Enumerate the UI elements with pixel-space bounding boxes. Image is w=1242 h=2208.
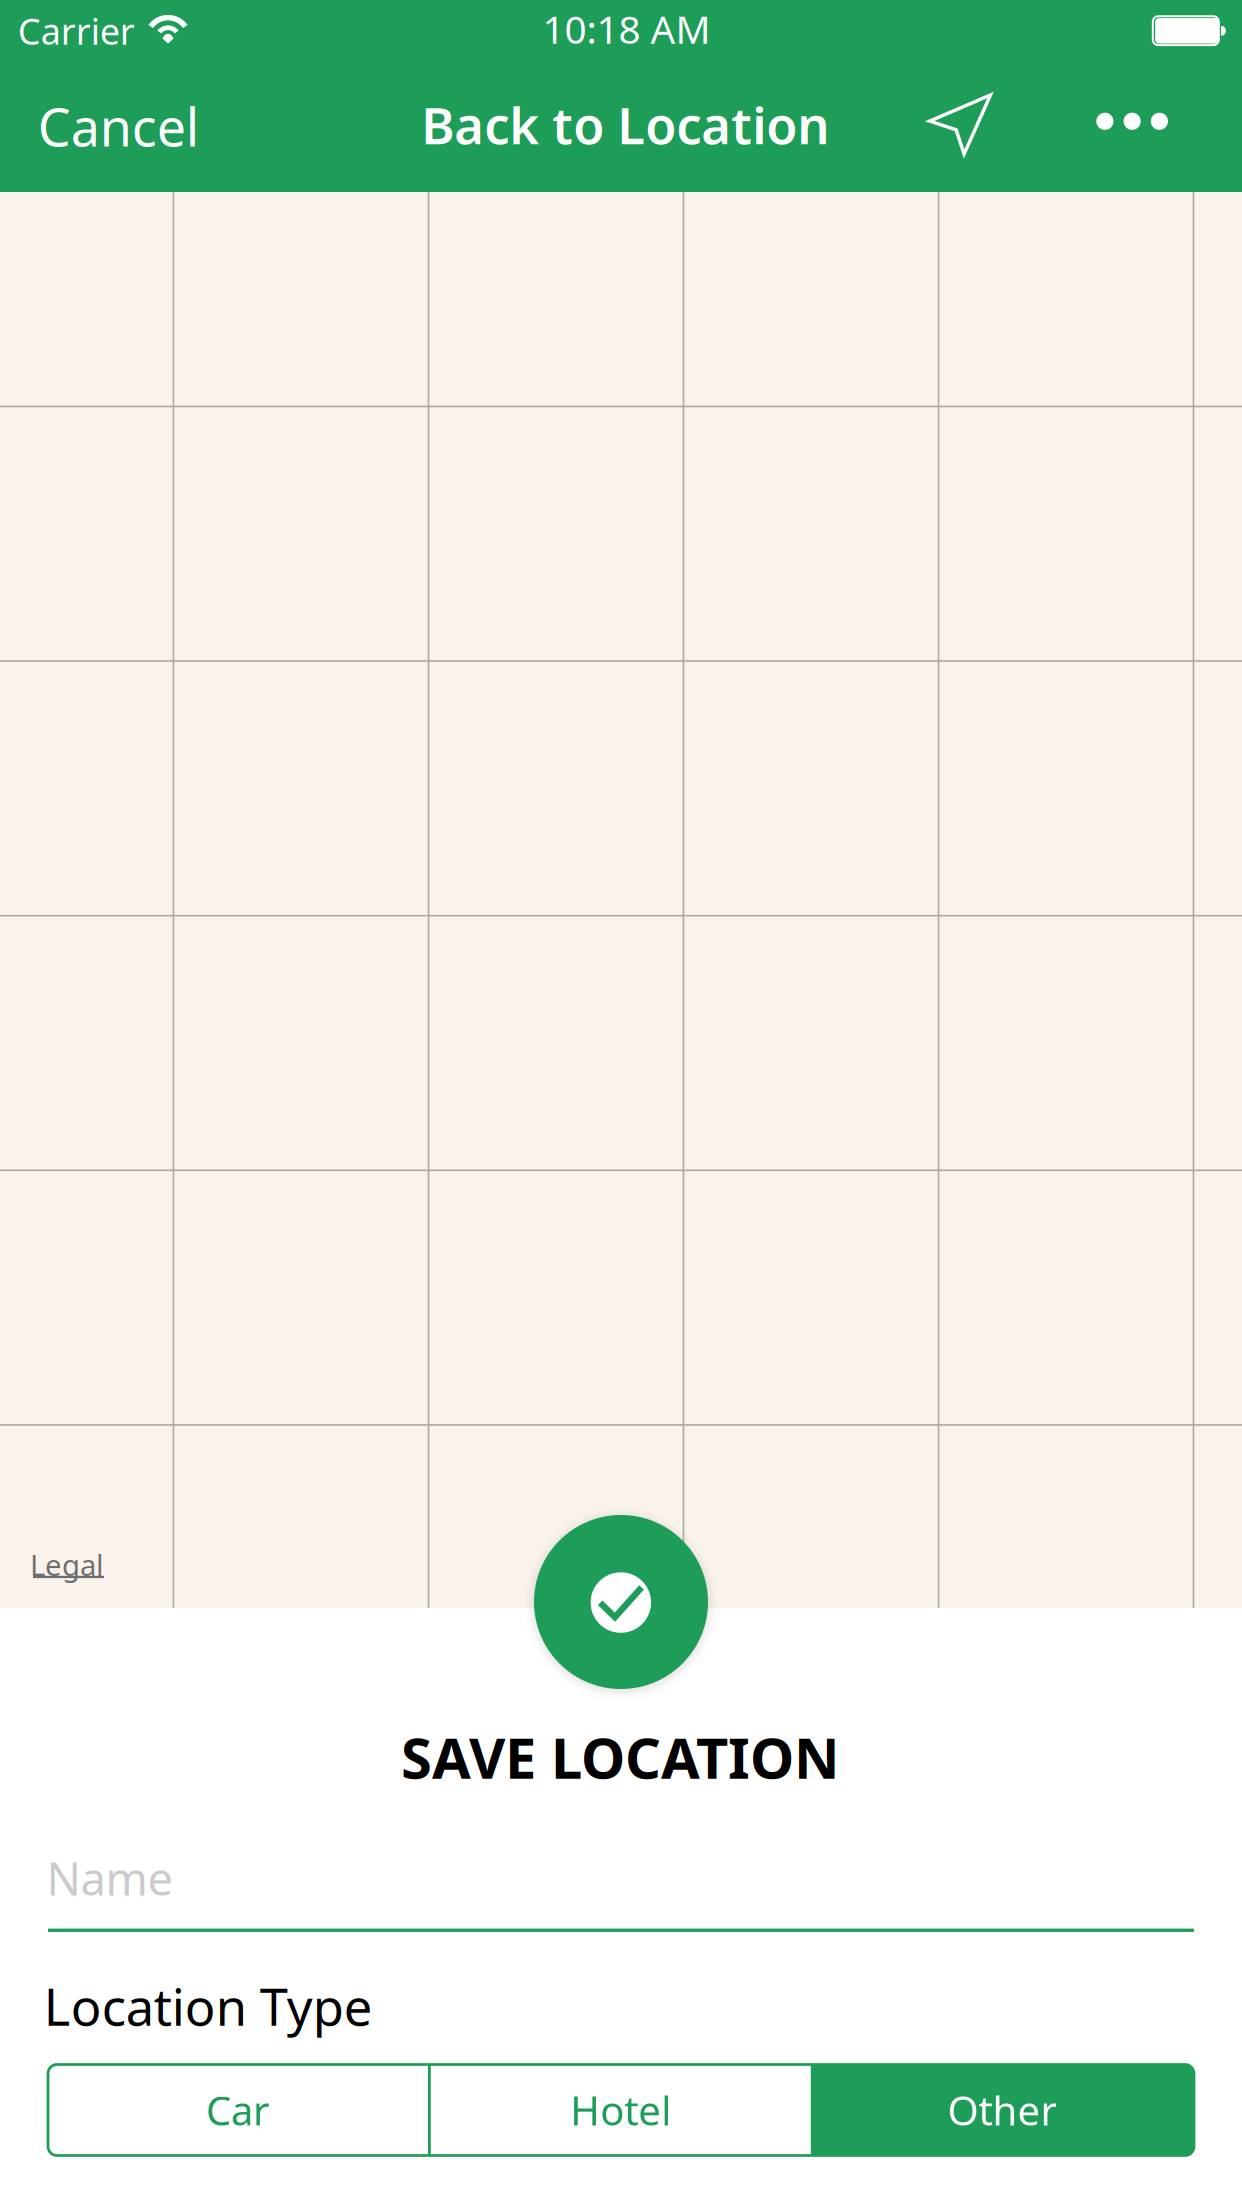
staticText: Carrier bbox=[18, 7, 135, 55]
button[interactable]: Hotel bbox=[431, 2064, 811, 2155]
button[interactable]: Car bbox=[48, 2064, 428, 2155]
staticText: Cancel bbox=[38, 92, 199, 161]
staticText: 10:18 AM bbox=[542, 3, 710, 54]
staticText: Other bbox=[947, 2083, 1057, 2136]
staticText: Legal bbox=[30, 1545, 104, 1584]
button[interactable]: Legal bbox=[30, 1545, 120, 1589]
staticText: Name bbox=[46, 1848, 173, 1908]
staticText: Back to Location bbox=[421, 91, 829, 158]
button[interactable]: Other bbox=[811, 2064, 1194, 2155]
staticText: Location Type bbox=[44, 1972, 373, 2040]
staticText: Hotel bbox=[570, 2083, 671, 2136]
staticText: Car bbox=[206, 2083, 270, 2136]
button[interactable]: Current location bbox=[896, 61, 1024, 191]
button[interactable]: More options bbox=[1066, 61, 1208, 191]
staticText: SAVE LOCATION bbox=[401, 1720, 840, 1794]
button[interactable]: Name bbox=[46, 1832, 1196, 1932]
button[interactable]: Cancel bbox=[0, 60, 230, 192]
